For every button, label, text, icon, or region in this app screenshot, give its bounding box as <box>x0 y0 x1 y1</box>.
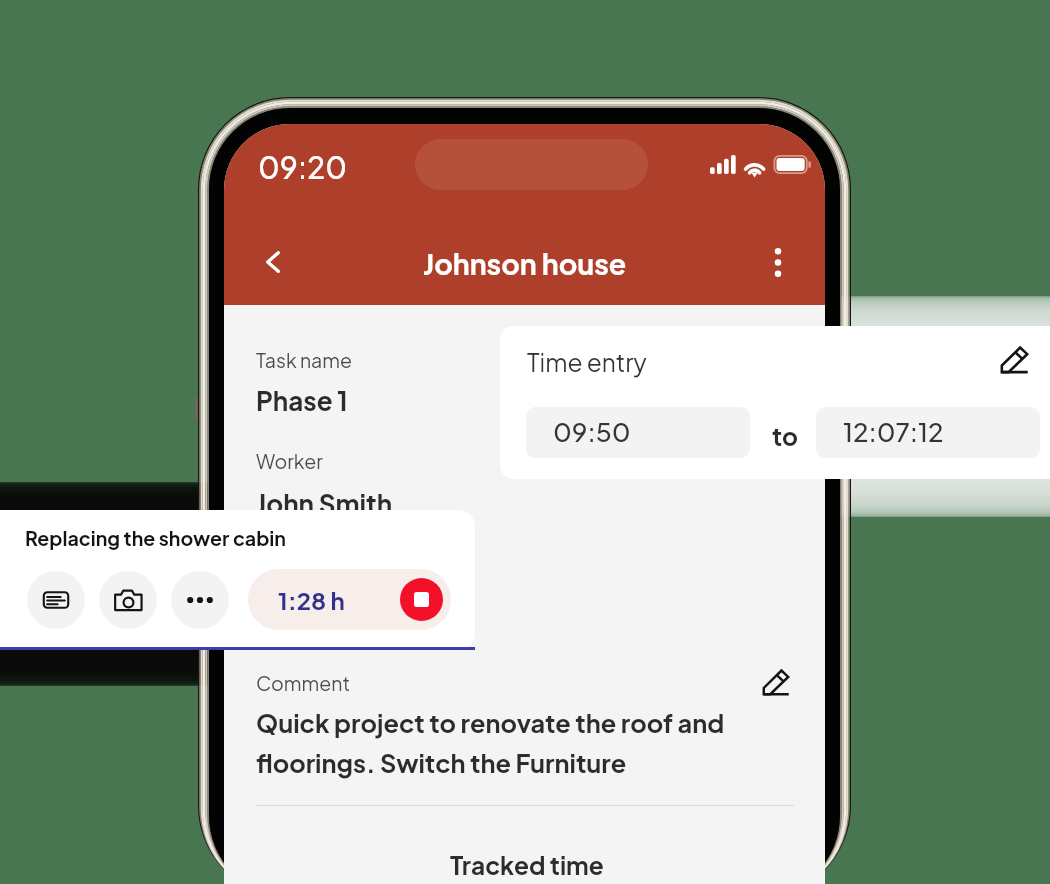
staticText: Time entry <box>527 347 647 378</box>
staticText: 1:28 h <box>278 585 345 615</box>
staticText: Johnson house <box>423 245 627 281</box>
staticText: Date <box>256 548 301 573</box>
staticText: 09:20 <box>258 148 347 186</box>
button[interactable]: Edit comment <box>762 669 790 697</box>
button[interactable]: Back <box>249 238 297 286</box>
staticText: Phase 1 <box>256 384 348 417</box>
button[interactable]: Edit time entry <box>994 340 1034 380</box>
button[interactable]: 1:28 h <box>248 569 451 630</box>
staticText: 12:07:12 <box>843 415 944 448</box>
staticText: Tracked time <box>450 850 604 881</box>
button[interactable]: More options <box>754 238 802 286</box>
staticText: 18.04.2023 <box>256 585 404 618</box>
staticText: Replacing the shower cabin <box>25 526 286 551</box>
staticText: John Smith <box>256 487 393 520</box>
staticText: Task name <box>256 348 352 373</box>
button[interactable]: More options <box>171 571 229 629</box>
button[interactable]: 12:07:12 <box>816 407 1040 458</box>
other: Stop timer <box>400 578 443 621</box>
staticText: Worker <box>256 449 323 474</box>
staticText: Comment <box>256 671 350 696</box>
button[interactable]: Camera <box>99 571 157 629</box>
staticText: 09:50 <box>553 415 631 448</box>
button[interactable]: Notes <box>27 571 85 629</box>
staticText: Quick project to renovate the roof and f… <box>256 707 740 779</box>
button[interactable]: 09:50 <box>526 407 750 458</box>
staticText: to <box>772 421 798 452</box>
